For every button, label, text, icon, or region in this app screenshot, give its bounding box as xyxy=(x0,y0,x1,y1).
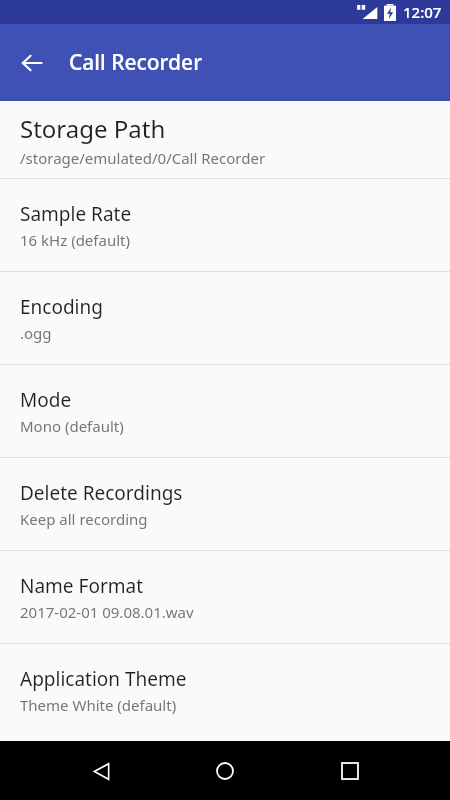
staticText: Storage Path xyxy=(20,112,166,145)
staticText: Keep all recording xyxy=(20,509,148,529)
button[interactable]: Back xyxy=(77,747,125,795)
button[interactable]: Back xyxy=(8,39,56,87)
staticText: Mono (default) xyxy=(20,416,124,436)
staticText: Sample Rate xyxy=(20,201,132,227)
button[interactable]: Encoding xyxy=(0,272,450,364)
staticText: Encoding xyxy=(20,294,103,320)
button[interactable]: Sample Rate xyxy=(0,179,450,271)
staticText: Delete Recordings xyxy=(20,480,183,506)
staticText: Theme White (default) xyxy=(20,695,177,715)
staticText: Application Theme xyxy=(20,666,187,692)
staticText: .ogg xyxy=(20,323,52,343)
staticText: /storage/emulated/0/Call Recorder xyxy=(20,148,266,168)
button[interactable]: Name Format xyxy=(0,551,450,643)
button[interactable]: Recent apps xyxy=(326,747,374,795)
button[interactable]: Mode xyxy=(0,365,450,457)
button[interactable]: Storage Path xyxy=(0,101,450,178)
button[interactable]: Delete Recordings xyxy=(0,458,450,550)
staticText: Call Recorder xyxy=(69,48,203,77)
button[interactable]: Application Theme xyxy=(0,644,450,736)
staticText: 16 kHz (default) xyxy=(20,230,130,250)
staticText: Name Format xyxy=(20,573,144,599)
staticText: 12:07 xyxy=(403,2,442,22)
button[interactable]: Home xyxy=(201,747,249,795)
staticText: Mode xyxy=(20,387,72,413)
staticText: 2017-02-01 09.08.01.wav xyxy=(20,602,194,622)
